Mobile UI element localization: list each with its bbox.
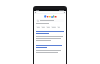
button[interactable] [34,31,66,41]
button[interactable] [41,26,45,28]
button[interactable] [51,26,56,28]
button[interactable] [57,26,60,28]
button[interactable] [46,26,50,28]
button[interactable]: Search [36,19,64,22]
button[interactable] [36,26,40,28]
button[interactable] [34,45,66,53]
